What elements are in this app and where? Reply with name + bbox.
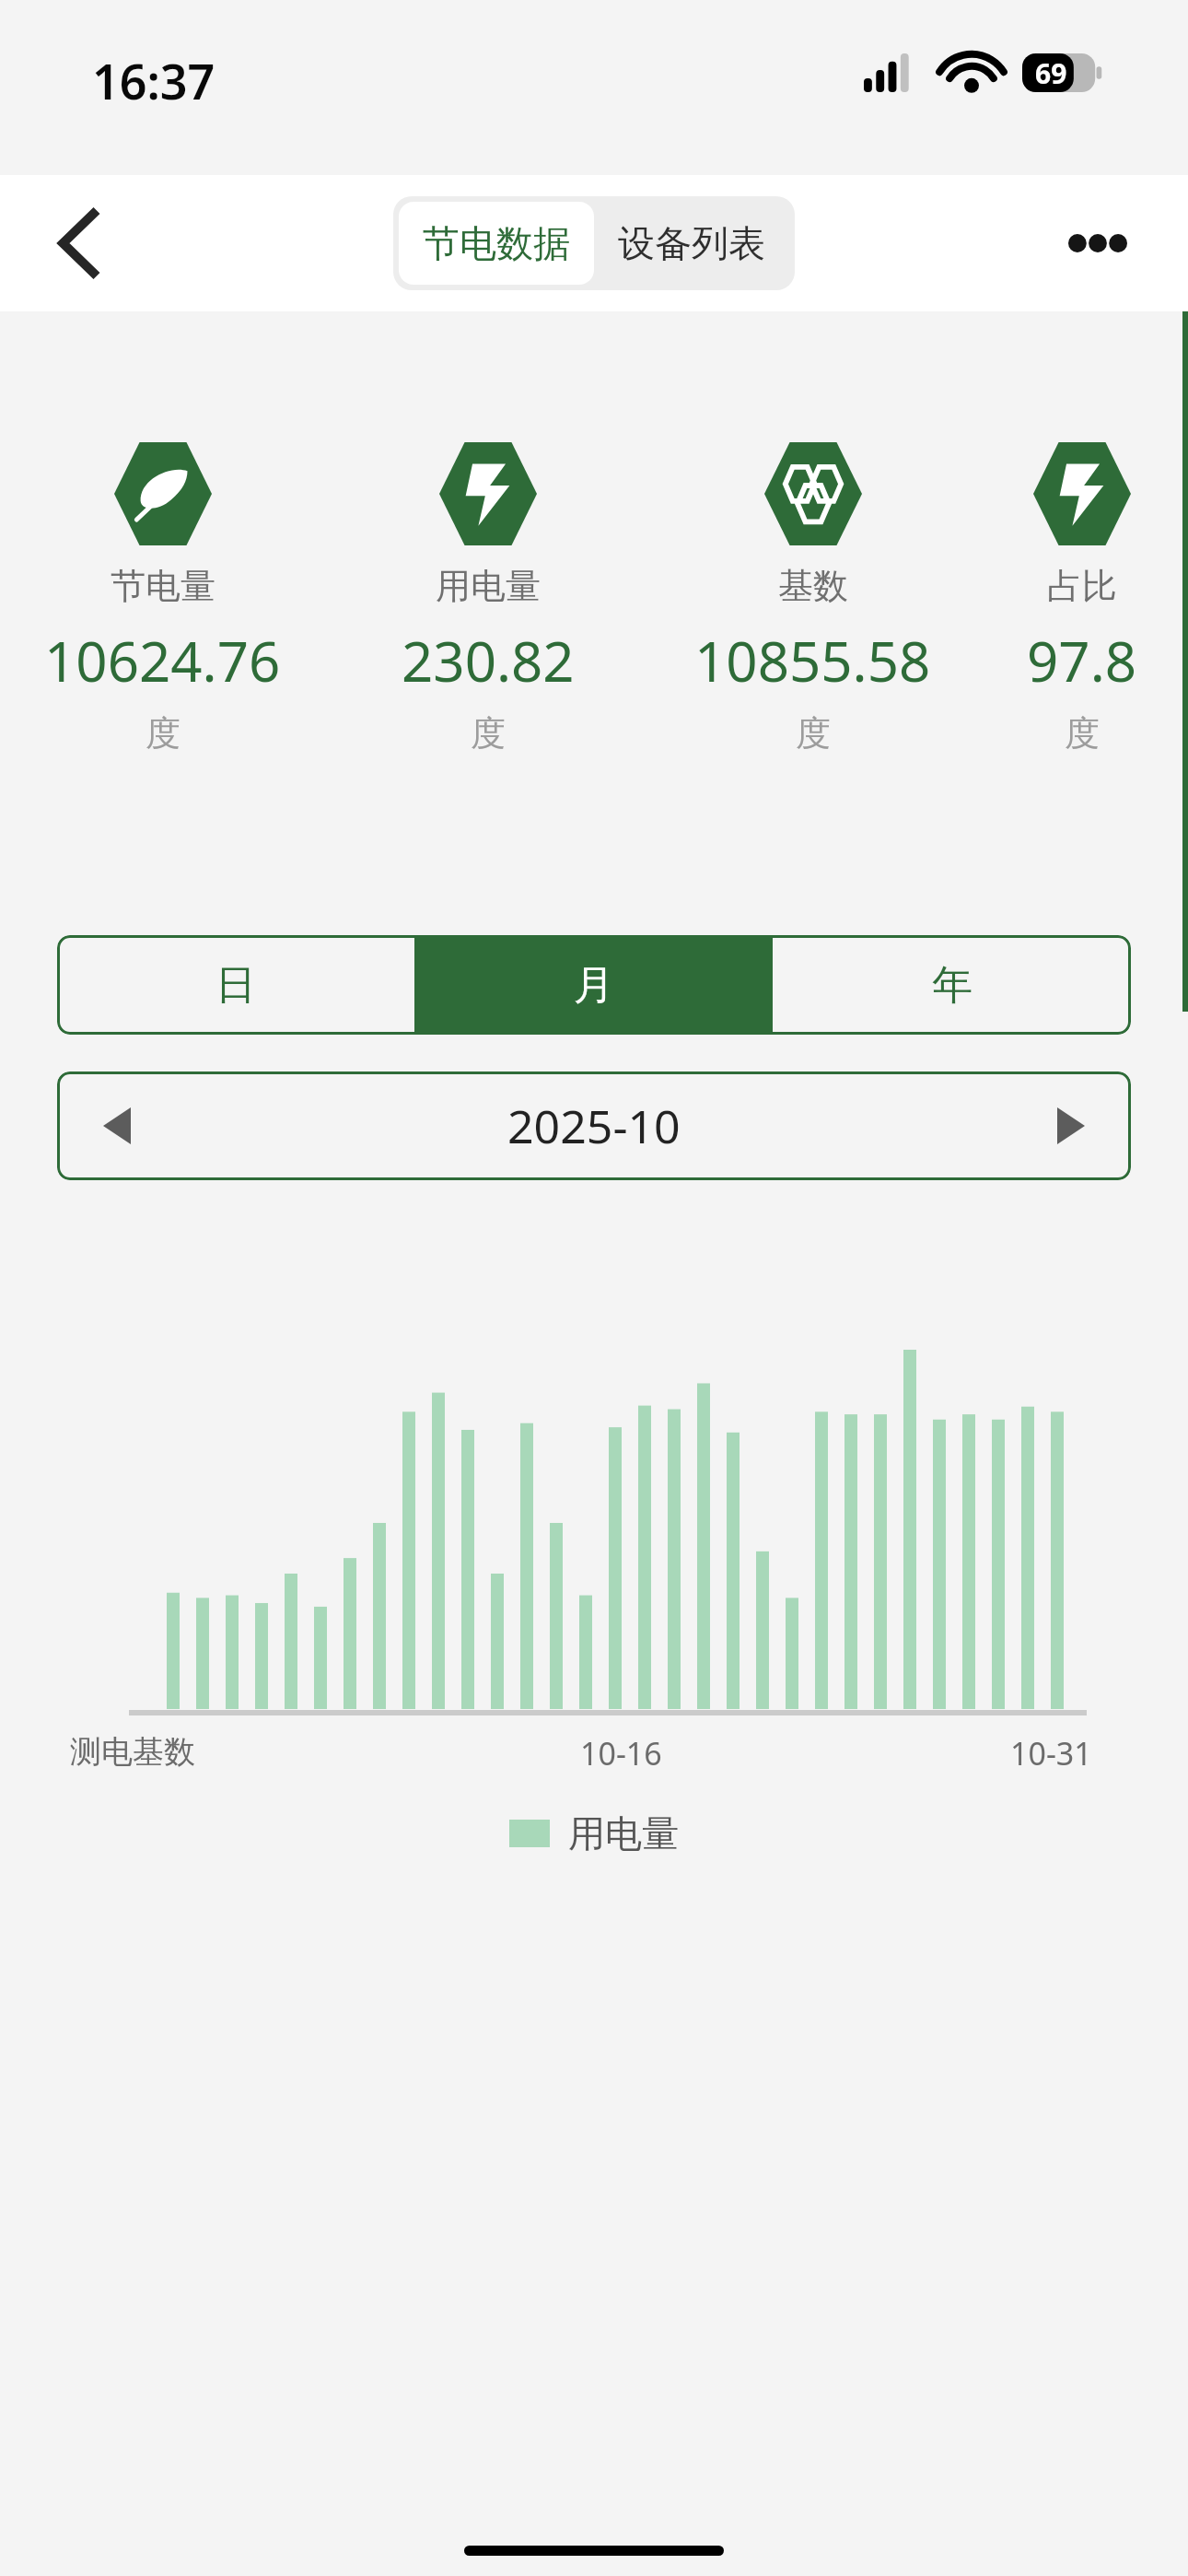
- button[interactable]: 年: [773, 935, 1131, 1035]
- staticText: 10-16: [580, 1732, 662, 1774]
- staticText: 度: [146, 711, 181, 755]
- button[interactable]: 占比: [975, 442, 1188, 755]
- staticText: 2025-10: [507, 1095, 681, 1157]
- staticText: 节电量: [111, 564, 215, 608]
- staticText: 10-31: [1010, 1732, 1092, 1774]
- staticText: 度: [1065, 711, 1100, 755]
- staticText: 度: [471, 711, 506, 755]
- button[interactable]: Previous month: [57, 1071, 177, 1180]
- button[interactable]: 节电量: [0, 442, 325, 755]
- button[interactable]: 节电数据: [399, 202, 594, 285]
- staticText: 度: [796, 711, 831, 755]
- staticText: 10624.76: [44, 623, 281, 698]
- button[interactable]: 设备列表: [594, 202, 789, 285]
- staticText: 基数: [778, 564, 848, 608]
- button[interactable]: 月: [414, 935, 773, 1035]
- staticText: 16:37: [92, 48, 215, 113]
- staticText: 占比: [1047, 564, 1117, 608]
- staticText: 日: [215, 960, 256, 1011]
- staticText: 节电数据: [423, 220, 570, 266]
- staticText: 230.82: [402, 623, 575, 698]
- staticText: 用电量: [436, 564, 541, 608]
- button[interactable]: 基数: [650, 442, 975, 755]
- staticText: 97.8: [1027, 623, 1137, 698]
- staticText: 用电量: [568, 1810, 679, 1856]
- button[interactable]: 日: [57, 935, 414, 1035]
- staticText: 年: [932, 960, 973, 1011]
- button[interactable]: 用电量: [325, 442, 650, 755]
- button[interactable]: More options: [1054, 199, 1142, 287]
- staticText: 10855.58: [694, 623, 931, 698]
- button[interactable]: Next month: [1011, 1071, 1131, 1180]
- staticText: 设备列表: [618, 220, 765, 266]
- button[interactable]: Back: [35, 199, 123, 287]
- staticText: 69: [1035, 54, 1067, 92]
- staticText: 月: [574, 960, 614, 1011]
- staticText: 测电基数: [70, 1732, 195, 1772]
